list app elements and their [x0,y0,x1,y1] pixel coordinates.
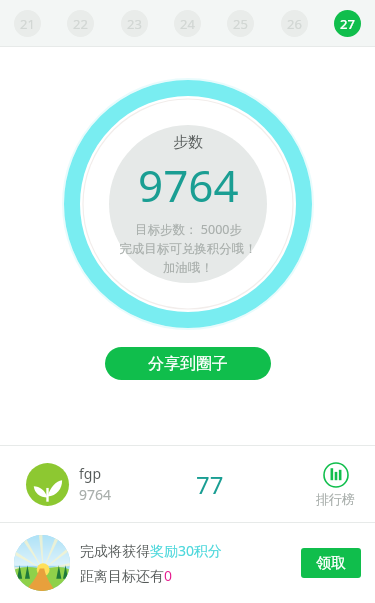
staticText: 25 [233,15,248,33]
button[interactable]: fgp [0,446,375,522]
staticText: fgp [79,464,102,483]
button[interactable]: 24 [174,10,201,37]
staticText: 目标步数： 5000步 [135,221,242,238]
staticText: 27 [340,15,355,33]
button[interactable]: 领取 [301,548,361,578]
staticText: 领取 [316,554,346,573]
staticText: 步数 [173,133,203,152]
button[interactable]: 23 [121,10,148,37]
button[interactable]: 分享到圈子 [105,347,271,380]
staticText: 排行榜 [316,491,355,507]
staticText: 22 [73,15,88,33]
staticText: 加油哦！ [163,260,213,276]
staticText: 77 [196,468,224,501]
staticText: 23 [127,15,142,33]
staticText: 9764 [138,155,239,215]
staticText: 分享到圈子 [148,354,228,374]
staticText: 26 [287,15,302,33]
button[interactable]: 排行榜 [316,462,355,507]
staticText: 距离目标还有0 [80,566,173,585]
button[interactable]: 25 [227,10,254,37]
staticText: 完成目标可兑换积分哦！ [119,241,257,257]
button[interactable]: 21 [14,10,41,37]
staticText: 9764 [79,485,112,504]
staticText: 完成将获得奖励30积分 [80,541,223,560]
button[interactable]: 22 [67,10,94,37]
button[interactable]: 27 [334,10,361,37]
staticText: 21 [20,15,35,33]
button[interactable]: 26 [281,10,308,37]
staticText: 24 [180,15,195,33]
